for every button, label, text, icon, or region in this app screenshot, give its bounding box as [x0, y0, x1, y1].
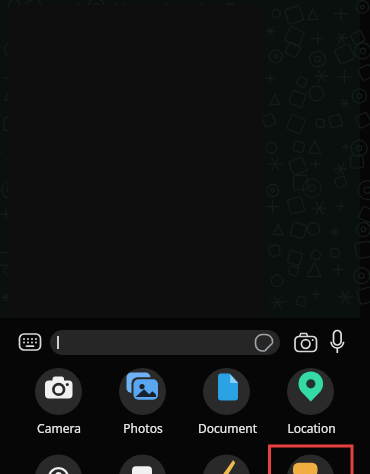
button[interactable] — [281, 452, 341, 474]
button[interactable] — [113, 452, 173, 474]
staticText: Photos — [123, 420, 163, 436]
button[interactable] — [325, 330, 349, 354]
staticText: Camera — [37, 420, 81, 436]
staticText: Location — [287, 420, 336, 436]
button[interactable] — [29, 452, 89, 474]
button[interactable] — [29, 366, 89, 436]
button[interactable] — [197, 452, 257, 474]
button[interactable] — [113, 366, 173, 436]
button[interactable] — [292, 330, 320, 354]
button[interactable] — [197, 366, 257, 436]
staticText: Document — [198, 420, 257, 436]
button[interactable] — [50, 330, 280, 355]
button[interactable] — [281, 366, 341, 436]
button[interactable] — [16, 330, 44, 354]
